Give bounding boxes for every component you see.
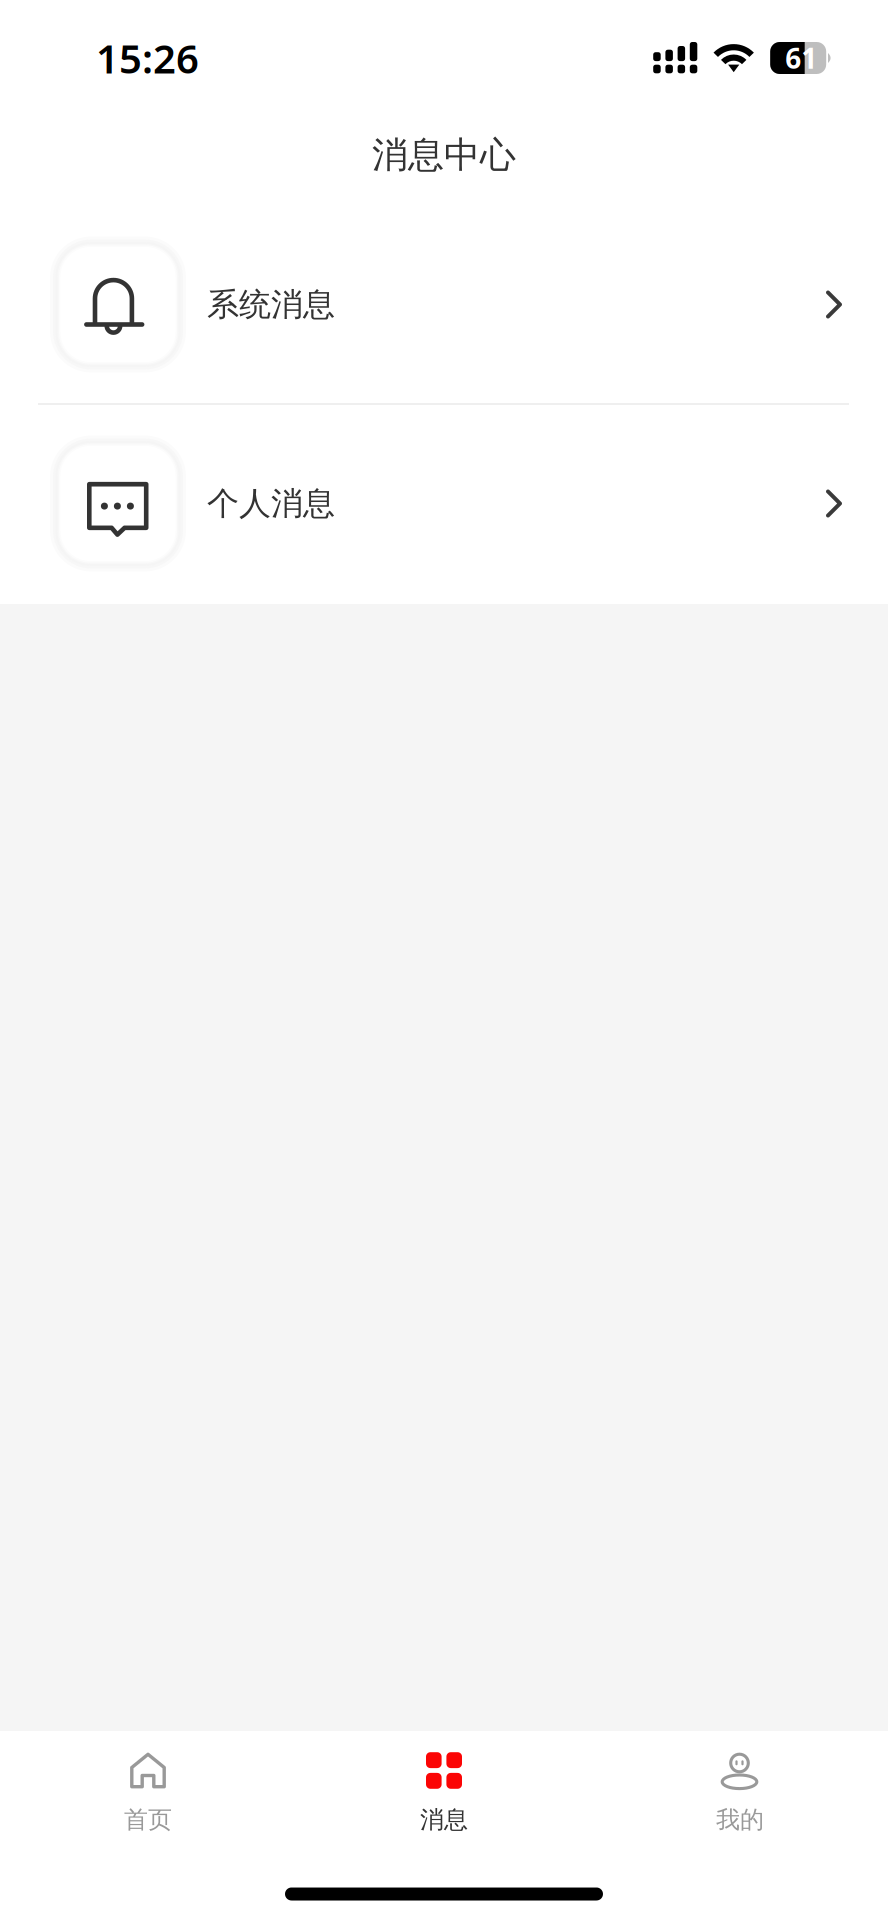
staticText: 系统消息	[207, 285, 335, 324]
staticText: 我的	[716, 1805, 764, 1834]
button[interactable]: 消息	[296, 1752, 592, 1834]
staticText: 消息	[420, 1805, 468, 1834]
staticText: 61	[785, 39, 817, 77]
button[interactable]: 我的	[592, 1752, 888, 1834]
staticText: 个人消息	[207, 484, 335, 523]
button[interactable]: 个人消息	[0, 405, 888, 602]
staticText: 首页	[124, 1805, 172, 1834]
button[interactable]: 系统消息	[0, 206, 888, 403]
button[interactable]: 首页	[0, 1752, 296, 1834]
staticText: 15:26	[96, 31, 199, 84]
staticText: 消息中心	[372, 133, 516, 177]
